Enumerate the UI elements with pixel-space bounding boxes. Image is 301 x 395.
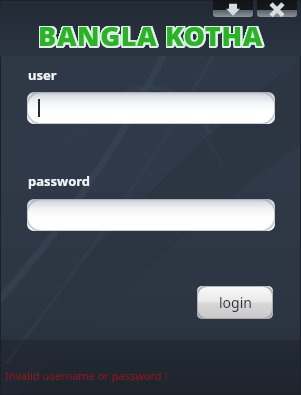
button[interactable]: Close [257,0,297,17]
staticText: BANGLA KOTHA [0,16,300,53]
button[interactable] [27,92,275,124]
staticText: BANGLA KOTHA [0,17,300,54]
staticText: BANGLA KOTHA [2,17,301,54]
staticText: BANGLA KOTHA [1,16,301,53]
staticText: BANGLA KOTHA [0,16,301,53]
staticText: BANGLA KOTHA [1,17,301,54]
staticText: BANGLA KOTHA [0,19,301,56]
staticText: BANGLA KOTHA [0,16,300,53]
staticText: BANGLA KOTHA [0,19,300,56]
button[interactable] [27,199,275,231]
staticText: BANGLA KOTHA [0,17,301,54]
staticText: BANGLA KOTHA [1,18,301,55]
staticText: user [28,66,57,84]
staticText: BANGLA KOTHA [0,16,300,53]
staticText: BANGLA KOTHA [0,18,300,55]
button[interactable]: Minimize [213,0,253,17]
staticText: BANGLA KOTHA [1,16,301,53]
staticText: Invalid username or password ! [5,368,168,383]
staticText: BANGLA KOTHA [2,18,301,55]
staticText: BANGLA KOTHA [1,19,301,56]
button[interactable]: login [197,286,273,319]
staticText: BANGLA KOTHA [0,18,300,55]
staticText: BANGLA KOTHA [0,16,301,53]
staticText: BANGLA KOTHA [0,18,301,55]
staticText: BANGLA KOTHA [0,17,300,54]
staticText: BANGLA KOTHA [2,16,301,53]
staticText: login [219,293,252,312]
staticText: password [28,172,91,190]
